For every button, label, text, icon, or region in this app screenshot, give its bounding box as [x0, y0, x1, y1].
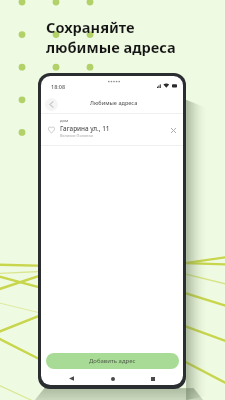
button[interactable]: Назад — [65, 372, 78, 385]
staticText: Сохраняйте — [46, 17, 135, 37]
staticText: 18:08 — [51, 83, 66, 90]
staticText: Любимые адреса — [90, 99, 138, 106]
button[interactable]: дом — [41, 114, 183, 145]
staticText: Великие Полянки — [60, 133, 93, 138]
staticText: дом — [60, 118, 69, 124]
staticText: любимые адреса — [46, 37, 176, 57]
staticText: Гагарина ул., 11 — [60, 124, 110, 133]
button[interactable]: Удалить — [167, 124, 179, 136]
button[interactable]: Добавить адрес — [46, 353, 179, 369]
button[interactable]: Главная — [106, 372, 119, 385]
staticText: Добавить адрес — [89, 357, 136, 365]
button[interactable]: Назад — [45, 98, 58, 111]
button[interactable]: Обзор — [146, 372, 159, 385]
